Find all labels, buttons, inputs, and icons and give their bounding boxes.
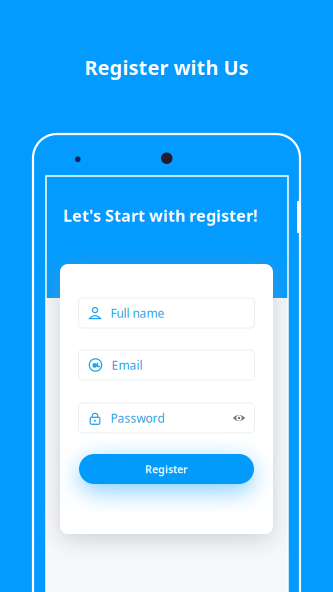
button[interactable]: Email — [78, 350, 254, 380]
button[interactable]: Password — [78, 403, 254, 433]
staticText: Register — [145, 462, 188, 476]
staticText: Password — [110, 410, 164, 426]
staticText: Let's Start with register! — [63, 205, 258, 226]
button[interactable]: Full name — [78, 298, 254, 328]
button[interactable]: Register — [79, 454, 254, 484]
staticText: Email — [111, 357, 142, 373]
staticText: Full name — [110, 305, 164, 321]
staticText: Register with Us — [84, 54, 248, 81]
